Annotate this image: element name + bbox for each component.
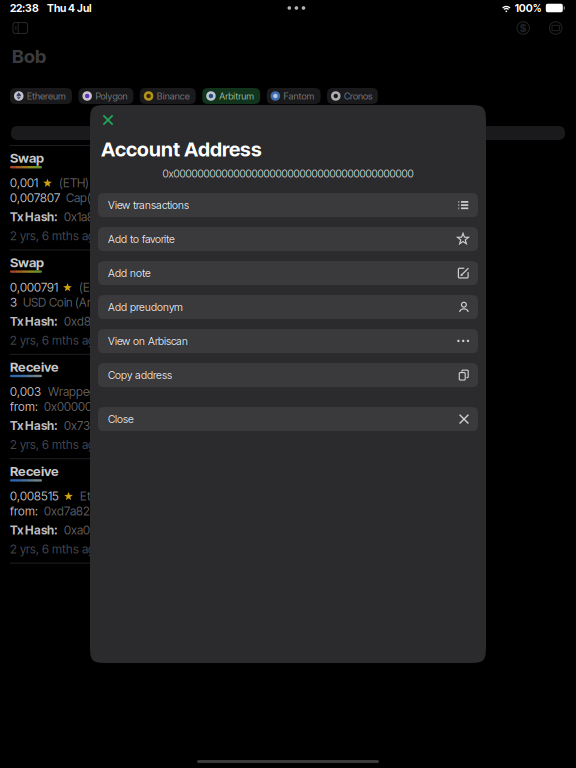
staticText: Ethereum: [27, 90, 66, 102]
staticText: Wrapped Ether: [48, 384, 127, 399]
staticText: Tx Hash:: [10, 523, 58, 537]
staticText: (ETH): [79, 280, 109, 294]
staticText: USD Coin (Arb1): [23, 295, 106, 309]
staticText: 2 yrs, 6 mths ago: [10, 229, 102, 243]
staticText: Polygon: [95, 90, 127, 102]
staticText: Add note: [108, 267, 151, 280]
staticText: Fantom: [284, 90, 315, 102]
staticText: Bob: [12, 45, 46, 68]
button[interactable]: Ethereum: [10, 88, 72, 104]
staticText: 0x1a8d24bc...: [64, 210, 137, 224]
staticText: 0x00000000000000000000000000000000000000…: [162, 167, 413, 180]
staticText: 0xa0489e12...: [64, 523, 137, 537]
button[interactable]: Binance: [140, 88, 196, 104]
button[interactable]: Copy address: [98, 363, 478, 387]
button[interactable]: Close: [98, 407, 478, 431]
staticText: 0xd8811c9f...: [64, 314, 131, 328]
button[interactable]: View transactions: [98, 193, 478, 217]
staticText: from:: [10, 399, 38, 414]
staticText: Thu 4 Jul: [47, 1, 92, 14]
staticText: Tx Hash:: [10, 314, 58, 328]
staticText: Close: [108, 413, 134, 426]
staticText: Binance: [157, 90, 190, 102]
staticText: Cronos: [344, 90, 372, 102]
staticText: Copy address: [108, 369, 172, 382]
staticText: 0,008515: [10, 489, 59, 503]
button[interactable]: Add preudonym: [98, 295, 478, 319]
staticText: Swap: [10, 150, 44, 166]
button[interactable]: View on Arbiscan: [98, 329, 478, 353]
staticText: View on Arbiscan: [108, 335, 188, 348]
staticText: (ETH): [59, 176, 89, 190]
staticText: 0,000791: [10, 280, 58, 294]
staticText: 0,007807: [10, 191, 60, 205]
staticText: View transactions: [108, 199, 189, 212]
staticText: 100%: [515, 1, 542, 14]
staticText: Cap(CAP): [66, 191, 118, 205]
staticText: Receive: [10, 463, 59, 479]
staticText: Swap: [10, 254, 44, 270]
staticText: 0x00000000000: [44, 399, 134, 414]
staticText: Tx Hash:: [10, 210, 58, 224]
staticText: 3: [10, 295, 17, 309]
staticText: 0xd7a827fba4c: [44, 504, 126, 518]
staticText: 0x73f13237...: [64, 418, 133, 433]
staticText: 2 yrs, 6 mths ago: [10, 437, 102, 452]
staticText: Tx Hash:: [10, 418, 58, 433]
button[interactable]: Cronos: [327, 88, 378, 104]
button[interactable]: Close: [96, 108, 120, 132]
staticText: Ethereum: [80, 489, 130, 503]
button[interactable]: Add to favorite: [98, 227, 478, 251]
button[interactable]: Toggle Sidebar: [10, 19, 30, 36]
staticText: 22:38: [10, 1, 39, 14]
button[interactable]: Add note: [98, 261, 478, 285]
button[interactable]: Fantom: [267, 88, 321, 104]
staticText: $: [520, 21, 527, 34]
button[interactable]: Currency: [514, 19, 532, 37]
staticText: Receive: [10, 359, 59, 375]
staticText: from:: [10, 504, 38, 518]
button[interactable]: Cards: [546, 19, 565, 37]
button[interactable]: Arbitrum: [202, 88, 260, 104]
staticText: Account Address: [101, 137, 262, 161]
staticText: Arbitrum: [219, 90, 254, 102]
staticText: 0,001: [10, 176, 38, 190]
staticText: 2 yrs, 6 mths ago: [10, 333, 102, 347]
staticText: 0,003: [10, 384, 41, 399]
staticText: Add preudonym: [108, 301, 183, 314]
staticText: Add to favorite: [108, 233, 175, 246]
button[interactable]: Polygon: [78, 88, 133, 104]
staticText: 2 yrs, 6 mths ago: [10, 542, 102, 556]
